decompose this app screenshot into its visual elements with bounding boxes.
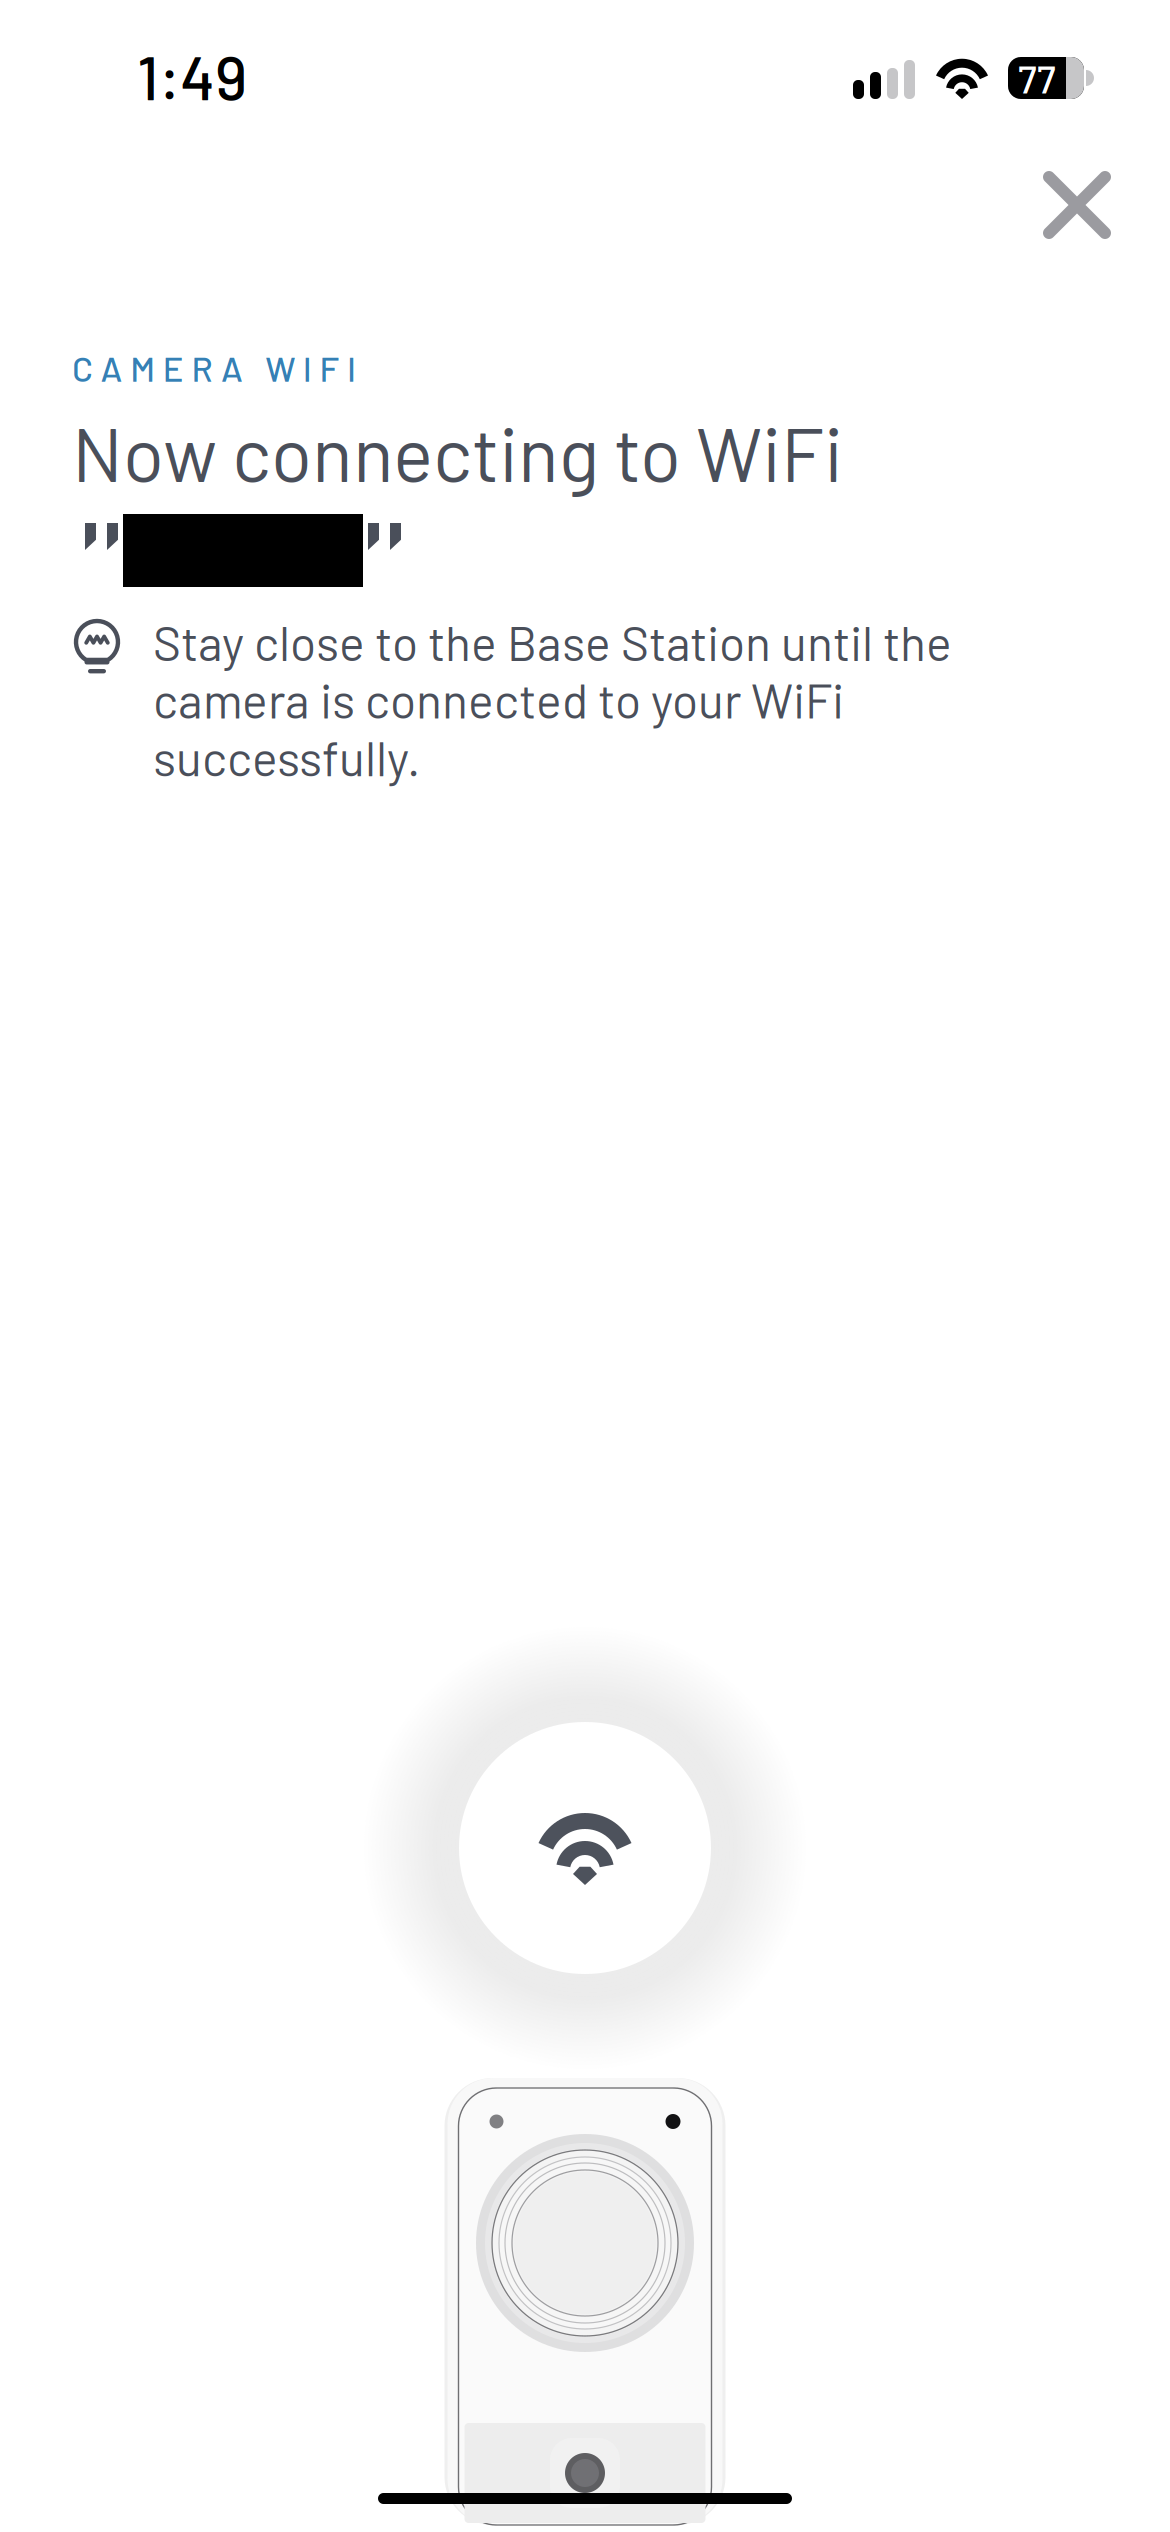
staticText: Now connecting to WiFi: [72, 407, 843, 497]
staticText: 77: [1018, 55, 1056, 101]
button[interactable]: Close: [1021, 149, 1133, 261]
staticText: 1:49: [137, 39, 247, 113]
staticText: CAMERA WIFI: [72, 347, 356, 389]
staticText: Stay close to the Base Station until the…: [153, 613, 952, 786]
